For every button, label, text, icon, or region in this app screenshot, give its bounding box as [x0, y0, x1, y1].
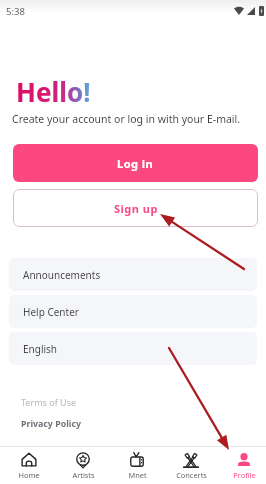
staticText: Home: [18, 470, 40, 480]
button[interactable]: Mnet: [110, 447, 164, 484]
staticText: Create your account or log in with your …: [12, 112, 241, 126]
staticText: Profile: [233, 470, 256, 480]
button[interactable]: Announcements: [9, 258, 257, 291]
staticText: Log in: [117, 156, 154, 171]
button[interactable]: Artists: [56, 447, 110, 484]
staticText: English: [23, 342, 58, 356]
button[interactable]: Home: [2, 447, 56, 484]
staticText: Announcements: [23, 268, 101, 282]
button[interactable]: Profile: [217, 447, 266, 484]
button[interactable]: English: [9, 332, 257, 365]
button[interactable]: Help Center: [9, 295, 257, 328]
staticText: Concerts: [176, 470, 207, 480]
button[interactable]: Sign up: [13, 189, 258, 227]
button[interactable]: Privacy Policy: [21, 418, 81, 430]
button[interactable]: Concerts: [164, 447, 218, 484]
staticText: Hello!: [16, 74, 91, 109]
staticText: Help Center: [23, 305, 79, 319]
staticText: Artists: [72, 470, 95, 480]
staticText: 5:38: [6, 5, 25, 18]
button[interactable]: Terms of Use: [21, 396, 77, 408]
staticText: Sign up: [114, 201, 158, 216]
staticText: Mnet: [128, 470, 147, 480]
button[interactable]: Log in: [13, 144, 258, 182]
